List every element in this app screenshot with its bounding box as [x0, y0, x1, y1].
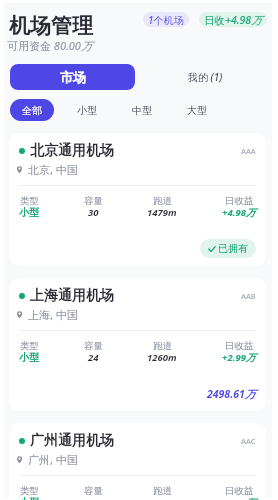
button[interactable]: 全部 — [10, 99, 54, 121]
staticText: 我的 (1) — [188, 70, 223, 84]
staticText: 1260m — [147, 351, 177, 364]
staticText: 广州, 中国 — [28, 452, 78, 467]
staticText: 30 — [88, 206, 99, 219]
staticText: 北京通用机场 — [30, 142, 114, 160]
staticText: 中型 — [132, 104, 152, 117]
staticText: 日收+4.98万 — [204, 13, 262, 27]
staticText: 容量 — [84, 340, 103, 352]
staticText: 类型 — [20, 195, 39, 207]
staticText: +4.98万 — [222, 206, 256, 219]
staticText: +2.99万 — [222, 351, 256, 364]
button[interactable]: 市场 — [10, 64, 135, 90]
staticText: 小型 — [19, 206, 39, 219]
button[interactable]: 北京通用机场 — [9, 133, 266, 266]
staticText: 24 — [88, 351, 99, 364]
staticText: 跑道 — [153, 195, 172, 207]
staticText: 北京, 中国 — [28, 162, 78, 177]
staticText: 容量 — [84, 485, 103, 497]
staticText: 上海通用机场 — [30, 287, 114, 305]
staticText: 日收益 — [225, 195, 254, 207]
staticText: AAA — [241, 146, 256, 156]
button[interactable]: 广州通用机场 — [9, 423, 266, 500]
button[interactable]: 大型 — [175, 99, 219, 121]
staticText: 上海, 中国 — [28, 307, 78, 322]
button[interactable]: 小型 — [65, 99, 109, 121]
button[interactable]: 日收+4.98万 — [199, 12, 267, 27]
staticText: 1479m — [147, 206, 177, 219]
staticText: 可用资金 80.00万 — [7, 38, 92, 53]
staticText: 广州通用机场 — [30, 432, 114, 450]
staticText: 小型 — [19, 351, 39, 364]
staticText: 大型 — [187, 104, 207, 117]
staticText: 小型 — [19, 496, 39, 500]
staticText: 类型 — [20, 340, 39, 352]
staticText: AAB — [241, 291, 256, 301]
button[interactable]: 已拥有 — [200, 239, 256, 258]
staticText: 市场 — [60, 69, 86, 85]
button[interactable]: 1个机场 — [143, 12, 189, 27]
staticText: 日收益 — [225, 340, 254, 352]
staticText: +3.50万 — [222, 496, 256, 500]
button[interactable]: 我的 (1) — [142, 64, 268, 90]
staticText: 容量 — [84, 195, 103, 207]
staticText: 1个机场 — [148, 13, 184, 27]
staticText: 小型 — [77, 104, 97, 117]
staticText: AAC — [241, 436, 256, 446]
button[interactable]: 上海通用机场 — [9, 278, 266, 411]
staticText: 日收益 — [225, 485, 254, 497]
staticText: 2498.61万 — [207, 387, 256, 401]
staticText: 类型 — [20, 485, 39, 497]
button[interactable]: 中型 — [120, 99, 164, 121]
staticText: 全部 — [22, 104, 42, 117]
staticText: 机场管理 — [9, 13, 93, 39]
staticText: 已拥有 — [218, 242, 248, 255]
staticText: 跑道 — [153, 340, 172, 352]
staticText: 跑道 — [153, 485, 172, 497]
